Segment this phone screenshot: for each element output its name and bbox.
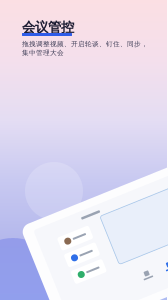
staticText: 会议管控 xyxy=(22,19,74,35)
staticText: 拖拽调整视频、开启轮谈、钉住、同步， xyxy=(22,40,148,48)
staticText: 集中管理大会 xyxy=(22,49,64,57)
